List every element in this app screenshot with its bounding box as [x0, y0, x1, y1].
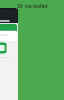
button[interactable]: Or via wallet [17, 3, 48, 10]
staticText: Or via wallet [17, 3, 48, 10]
button[interactable]: Wallet app preview [0, 8, 18, 100]
